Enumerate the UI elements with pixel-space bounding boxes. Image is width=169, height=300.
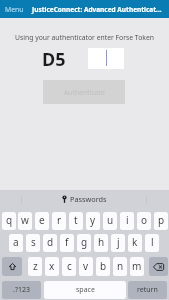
button[interactable]: x [45, 257, 59, 276]
staticText: m [132, 259, 142, 273]
staticText: l [151, 235, 154, 249]
staticText: k [132, 235, 138, 249]
button[interactable]: p [154, 212, 168, 230]
button[interactable]: Backspace [149, 257, 168, 276]
staticText: b [100, 259, 107, 273]
button[interactable]: f [60, 234, 74, 252]
button[interactable]: b [96, 257, 110, 276]
staticText: w [21, 213, 29, 227]
staticText: q [6, 213, 13, 227]
button[interactable]: j [111, 234, 125, 252]
button[interactable] [88, 48, 124, 69]
staticText: Passwords [70, 194, 107, 204]
staticText: i [126, 213, 129, 227]
button[interactable]: c [62, 257, 76, 276]
button[interactable]: return [128, 281, 167, 299]
button[interactable]: u [103, 212, 117, 230]
button[interactable]: z [28, 257, 42, 276]
button[interactable]: o [137, 212, 151, 230]
staticText: e [39, 213, 45, 227]
staticText: v [83, 259, 89, 273]
staticText: d [47, 235, 54, 249]
button[interactable]: Menu [4, 5, 25, 14]
staticText: return [137, 285, 158, 295]
staticText: D5 [42, 47, 66, 72]
button[interactable]: y [86, 212, 100, 230]
staticText: g [81, 235, 88, 249]
staticText: p [158, 213, 165, 227]
button[interactable]: i [120, 212, 134, 230]
button[interactable]: e [35, 212, 49, 230]
staticText: n [117, 259, 124, 273]
staticText: j [117, 235, 120, 249]
staticText: z [33, 259, 38, 273]
button[interactable]: h [94, 234, 108, 252]
button[interactable]: r [52, 212, 66, 230]
button[interactable]: m [130, 257, 144, 276]
staticText: r [57, 213, 62, 227]
button[interactable]: space [44, 281, 126, 299]
staticText: f [65, 235, 69, 249]
button[interactable]: q [2, 212, 16, 230]
button[interactable]: v [79, 257, 93, 276]
staticText: s [31, 235, 36, 249]
button[interactable]: n [113, 257, 127, 276]
button[interactable]: k [128, 234, 142, 252]
staticText: Authenticate [64, 88, 105, 97]
staticText: .?123 [13, 285, 30, 295]
staticText: Menu [5, 5, 24, 14]
button[interactable]: Passwords [62, 194, 107, 204]
button[interactable]: Shift [2, 257, 22, 276]
button[interactable]: a [9, 234, 23, 252]
staticText: Using your authenticator enter Forse Tok… [0, 33, 169, 42]
staticText: space [76, 285, 95, 295]
staticText: t [74, 213, 78, 227]
staticText: JusticeConnect: Advanced Authenticat... [32, 5, 162, 14]
staticText: u [107, 213, 114, 227]
button[interactable]: t [69, 212, 83, 230]
button[interactable]: .?123 [2, 281, 41, 299]
staticText: h [98, 235, 105, 249]
staticText: c [67, 259, 72, 273]
button[interactable]: l [145, 234, 159, 252]
staticText: a [13, 235, 19, 249]
button[interactable]: s [26, 234, 40, 252]
staticText: x [49, 259, 55, 273]
staticText: o [141, 213, 148, 227]
button[interactable]: g [77, 234, 91, 252]
staticText: y [90, 213, 96, 227]
button[interactable]: d [43, 234, 57, 252]
button[interactable]: w [18, 212, 32, 230]
